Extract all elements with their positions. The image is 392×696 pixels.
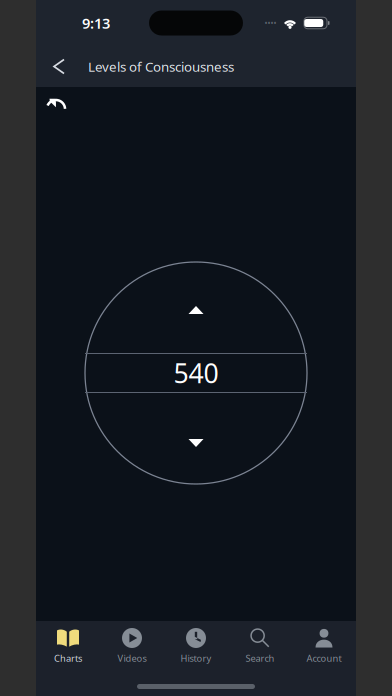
staticText: Search: [245, 652, 274, 664]
staticText: Videos: [117, 652, 146, 664]
staticText: 540: [173, 355, 218, 391]
button[interactable]: Search: [228, 621, 292, 669]
button[interactable]: Videos: [100, 621, 164, 669]
staticText: History: [180, 652, 211, 664]
staticText: Account: [306, 652, 341, 664]
staticText: Levels of Consciousness: [88, 58, 234, 75]
button[interactable]: Account: [292, 621, 356, 669]
staticText: ••••: [264, 18, 276, 28]
button[interactable]: Back: [41, 46, 77, 87]
button[interactable]: History: [164, 621, 228, 669]
staticText: 9:13: [82, 13, 110, 33]
button[interactable]: Undo: [36, 90, 77, 116]
button[interactable]: Charts: [36, 621, 100, 669]
staticText: Charts: [54, 652, 82, 664]
